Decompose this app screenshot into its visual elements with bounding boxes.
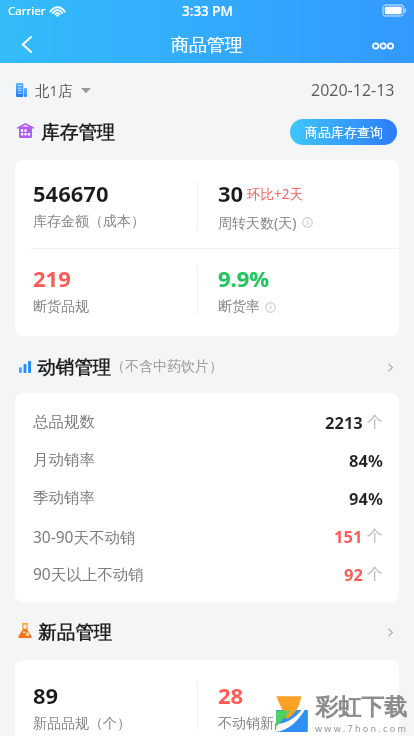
staticText: 新品管理 [38, 621, 112, 643]
staticText: 2213 [325, 411, 363, 433]
button[interactable]: 219 [33, 263, 89, 316]
staticText: （不含中药饮片） [111, 358, 223, 376]
button[interactable]: 90天以上不动销 [33, 555, 383, 592]
staticText: 84% [349, 449, 383, 471]
button[interactable]: 商品库存查询 [290, 119, 397, 145]
button[interactable]: 546670 [33, 178, 145, 231]
button[interactable]: 28 [218, 680, 288, 733]
staticText: 89 [33, 680, 59, 710]
button[interactable]: 30-90天不动销 [33, 517, 383, 555]
staticText: 商品库存查询 [305, 124, 383, 140]
button[interactable]: More options [364, 26, 414, 63]
staticText: 151 [334, 525, 363, 547]
staticText: 92 [344, 563, 363, 585]
staticText: 个 [367, 564, 383, 584]
button[interactable]: Back [0, 26, 50, 63]
staticText: 月动销率 [33, 450, 95, 470]
staticText: 断货率 [218, 298, 260, 316]
button[interactable]: 北1店 [16, 80, 91, 100]
staticText: 彩虹下载 [315, 693, 407, 722]
staticText: 546670 [33, 178, 109, 208]
staticText: 30 [218, 178, 244, 208]
staticText: 2020-12-13 [311, 79, 395, 101]
staticText: 总品规数 [33, 412, 95, 432]
staticText: 新品品规（个） [33, 715, 131, 733]
staticText: 不动销新品 [218, 715, 288, 733]
staticText: 库存管理 [41, 121, 115, 144]
staticText: 9.9% [218, 263, 270, 293]
staticText: 北1店 [35, 80, 73, 100]
button[interactable]: 季动销率 [33, 479, 383, 517]
staticText: 动销管理 [37, 356, 111, 378]
staticText: 28 [218, 680, 244, 710]
staticText: 周转天数(天) [218, 213, 297, 232]
staticText: Carrier [8, 3, 46, 19]
staticText: 30-90天不动销 [33, 526, 136, 547]
button[interactable]: 9.9% [218, 263, 276, 316]
staticText: 季动销率 [33, 488, 95, 508]
button[interactable]: 新品管理 [18, 621, 396, 643]
staticText: 90天以上不动销 [33, 563, 144, 584]
button[interactable]: 30 [218, 178, 313, 232]
staticText: 商品管理 [171, 34, 243, 57]
staticText: 219 [33, 263, 71, 293]
staticText: 94% [349, 487, 383, 509]
button[interactable]: 总品规数 [33, 403, 383, 441]
staticText: 3:33 PM [182, 2, 233, 20]
staticText: 个 [367, 526, 383, 546]
staticText: 个 [367, 412, 383, 432]
staticText: www.7hon.com [315, 722, 409, 734]
button[interactable]: 动销管理 [19, 356, 396, 378]
staticText: 环比+2天 [247, 185, 303, 203]
button[interactable]: 月动销率 [33, 441, 383, 479]
button[interactable]: 89 [33, 680, 131, 733]
staticText: 断货品规 [33, 298, 89, 316]
staticText: 库存金额（成本） [33, 213, 145, 231]
